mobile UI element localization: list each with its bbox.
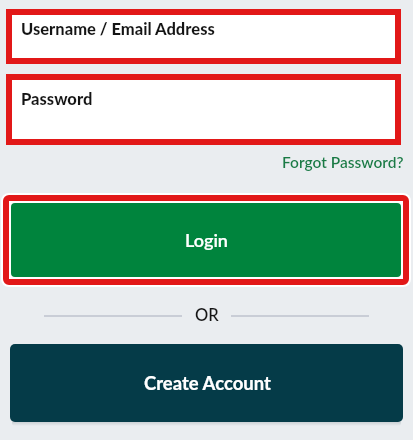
button[interactable] (10, 344, 403, 422)
staticText: Forgot Password? (282, 153, 404, 172)
staticText: OR (195, 305, 219, 325)
staticText: Username / Email Address (21, 19, 215, 39)
button[interactable] (6, 9, 401, 64)
staticText: Password (21, 89, 93, 109)
button[interactable]: Login (11, 203, 401, 277)
button[interactable]: Forgot Password? (282, 153, 404, 172)
button[interactable] (6, 74, 401, 145)
staticText: Create Account (144, 372, 271, 394)
staticText: Login (185, 229, 228, 251)
